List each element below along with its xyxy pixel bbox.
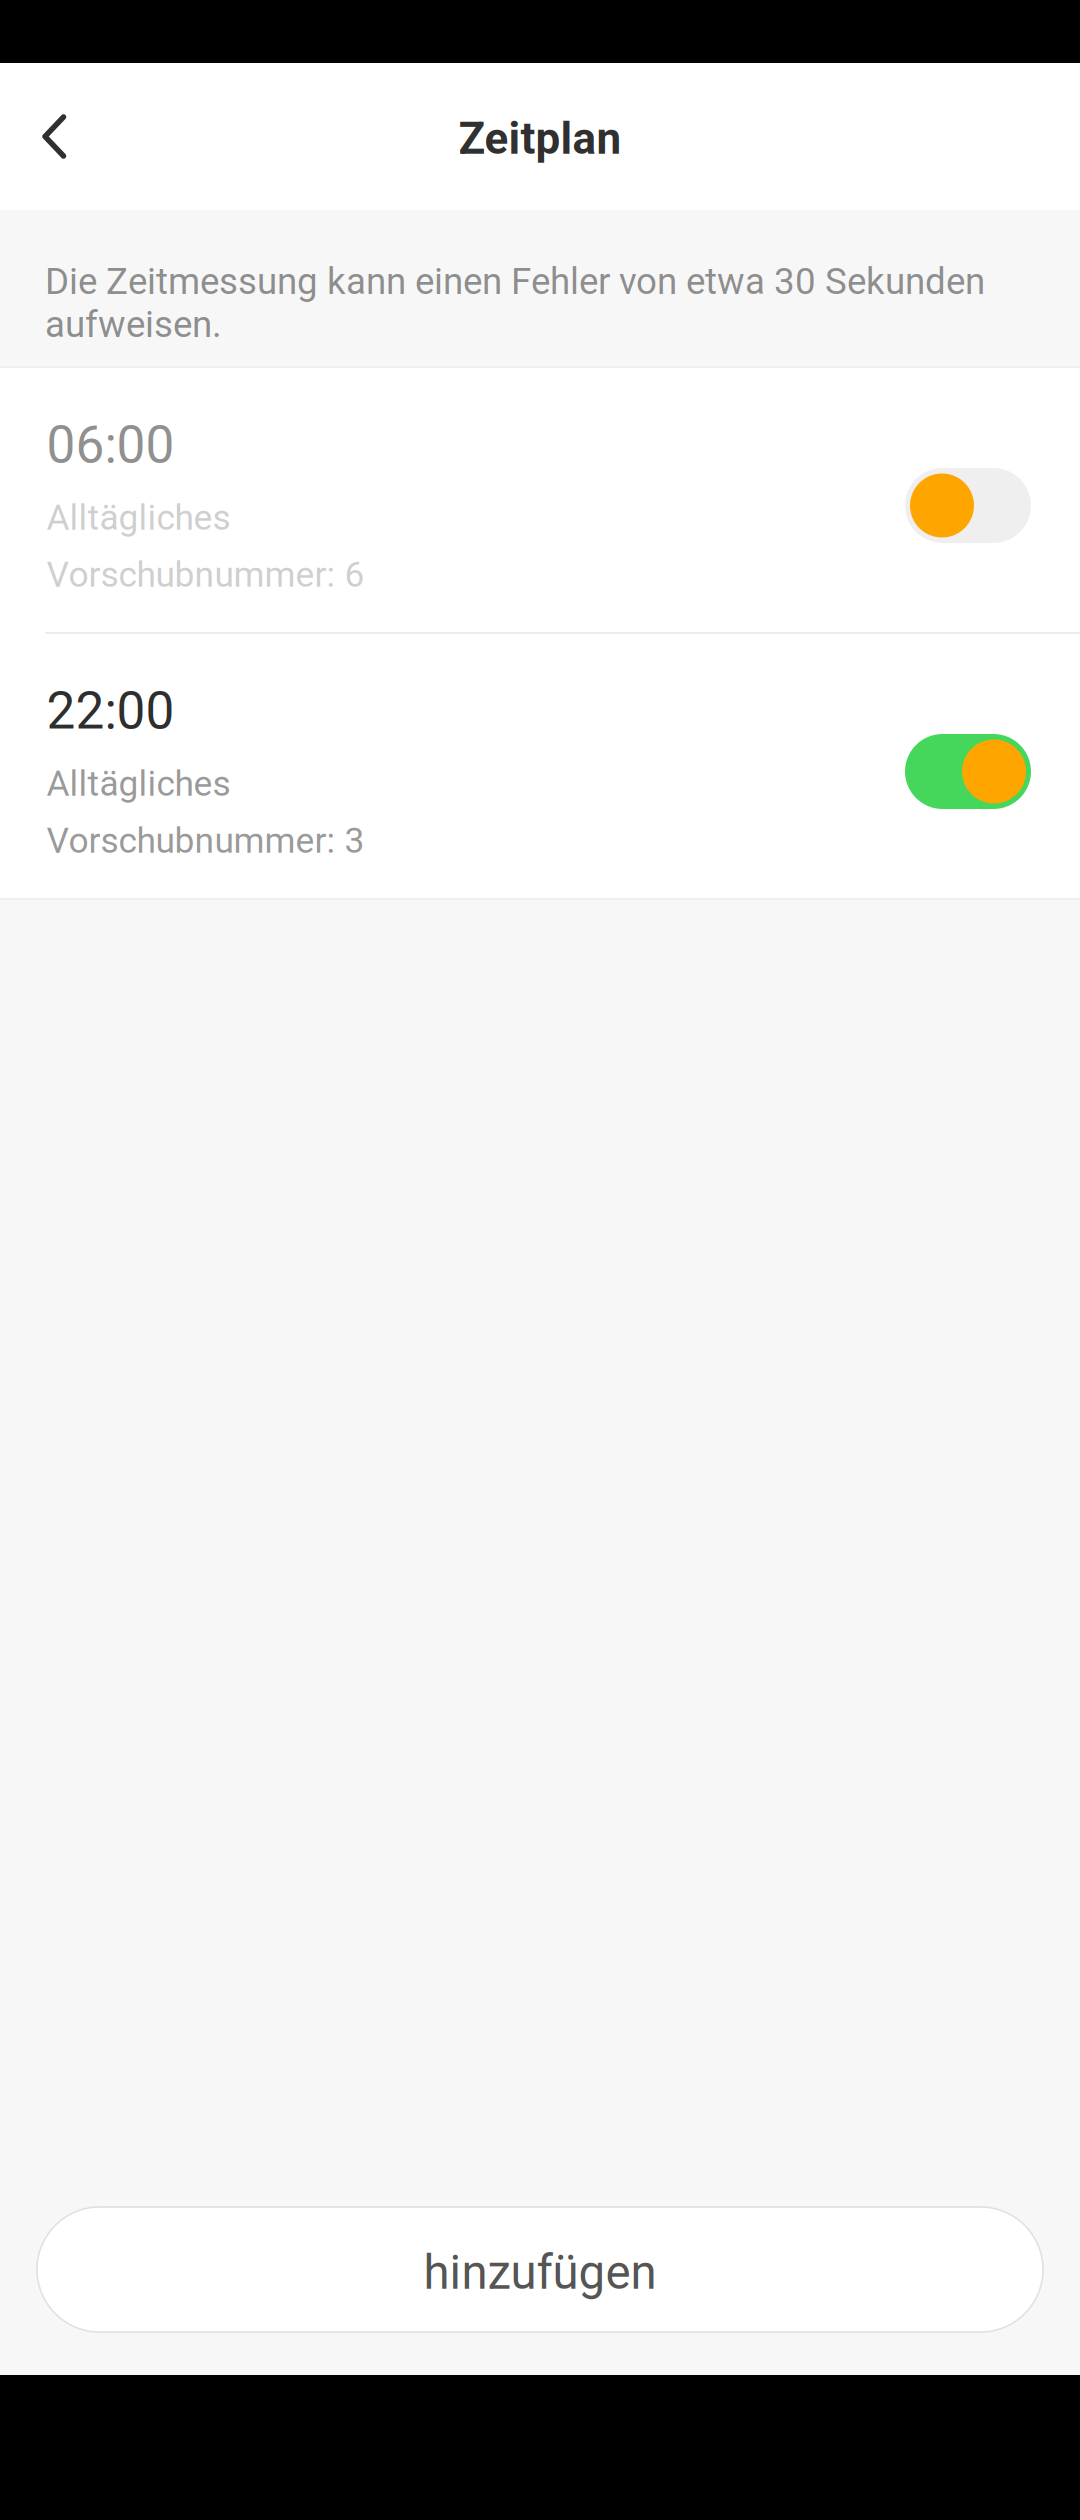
staticText: Alltägliches xyxy=(46,763,230,804)
staticText: Zeitplan xyxy=(458,113,621,165)
staticText: 22:00 xyxy=(46,681,174,741)
button[interactable]: Back xyxy=(0,63,100,210)
button[interactable]: 22:00 xyxy=(0,634,1080,898)
button[interactable]: hinzufügen xyxy=(37,2207,1043,2332)
button[interactable]: Alarm einschalten, aus xyxy=(905,468,1031,543)
staticText: aufweisen. xyxy=(45,303,222,346)
staticText: Die Zeitmessung kann einen Fehler von et… xyxy=(45,260,985,303)
staticText: 06:00 xyxy=(46,415,174,475)
staticText: Vorschubnummer: 3 xyxy=(46,820,364,861)
staticText: Vorschubnummer: 6 xyxy=(46,554,364,595)
button[interactable]: Alarm einschalten, an xyxy=(905,734,1031,809)
staticText: hinzufügen xyxy=(423,2245,656,2300)
button[interactable]: 06:00 xyxy=(0,368,1080,632)
staticText: Alltägliches xyxy=(46,497,230,538)
